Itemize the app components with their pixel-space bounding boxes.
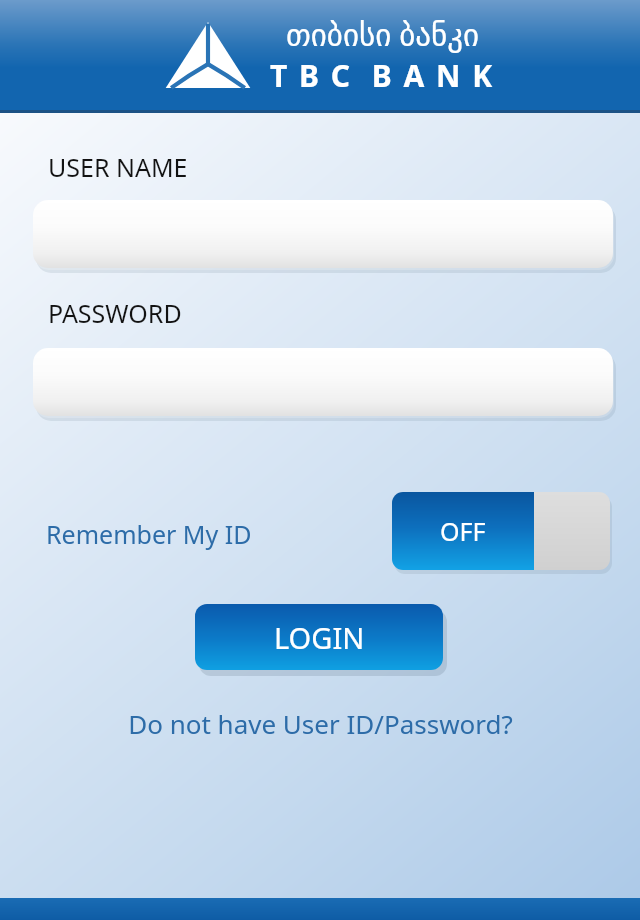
- button[interactable]: Remember My ID, off: [392, 492, 614, 576]
- staticText: T B C B A N K: [270, 55, 495, 96]
- staticText: Remember My ID: [46, 517, 252, 551]
- staticText: თიბისი ბანკი: [286, 13, 480, 55]
- button[interactable]: LOGIN: [195, 604, 443, 670]
- button[interactable]: Password input field: [33, 348, 613, 416]
- button[interactable]: Do not have User ID/Password?: [0, 701, 640, 745]
- staticText: PASSWORD: [48, 296, 182, 330]
- staticText: USER NAME: [48, 150, 188, 184]
- staticText: LOGIN: [274, 618, 365, 657]
- staticText: OFF: [440, 514, 486, 548]
- staticText: Do not have User ID/Password?: [128, 706, 513, 741]
- button[interactable]: User name input field: [33, 200, 613, 268]
